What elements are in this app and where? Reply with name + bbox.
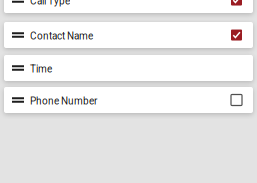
staticText: Time [30, 63, 52, 75]
button[interactable]: Contact Name [4, 22, 253, 48]
staticText: Call Type [30, 0, 70, 7]
staticText: Phone Number [30, 95, 97, 107]
button[interactable]: Phone Number [4, 87, 253, 113]
button[interactable]: Time [4, 55, 253, 81]
button[interactable]: Call Type [4, 0, 253, 13]
staticText: Contact Name [30, 30, 93, 42]
